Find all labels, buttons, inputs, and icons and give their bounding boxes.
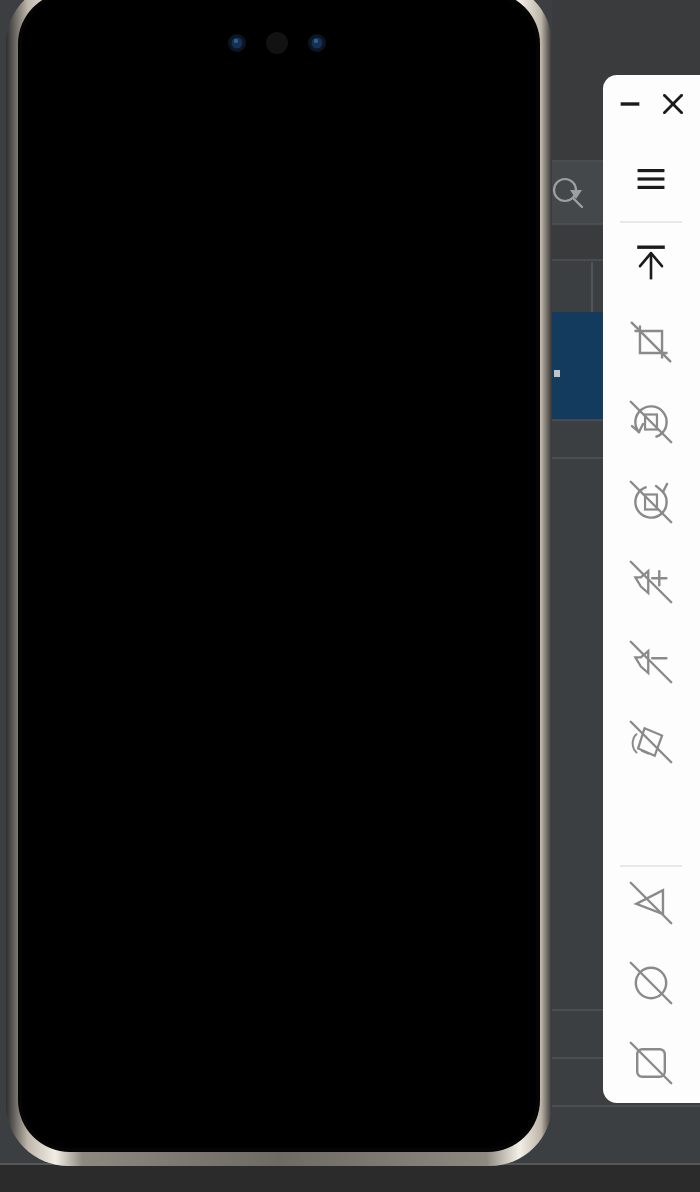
button[interactable]: Circle (628, 960, 674, 1006)
button[interactable]: Minimize (612, 86, 648, 122)
button[interactable]: Move up (628, 238, 674, 284)
button[interactable]: Rotate right (628, 479, 674, 525)
button[interactable]: Pointer (628, 880, 674, 926)
button[interactable]: Volume down (628, 639, 674, 685)
button[interactable]: Crop (628, 319, 674, 365)
button[interactable]: Screenshot (628, 1040, 674, 1086)
button[interactable]: Close (655, 86, 691, 122)
button[interactable]: Rotate device (628, 719, 674, 765)
button[interactable]: Volume up (628, 559, 674, 605)
button[interactable]: Menu (630, 158, 672, 200)
button[interactable]: Rotate left (628, 399, 674, 445)
